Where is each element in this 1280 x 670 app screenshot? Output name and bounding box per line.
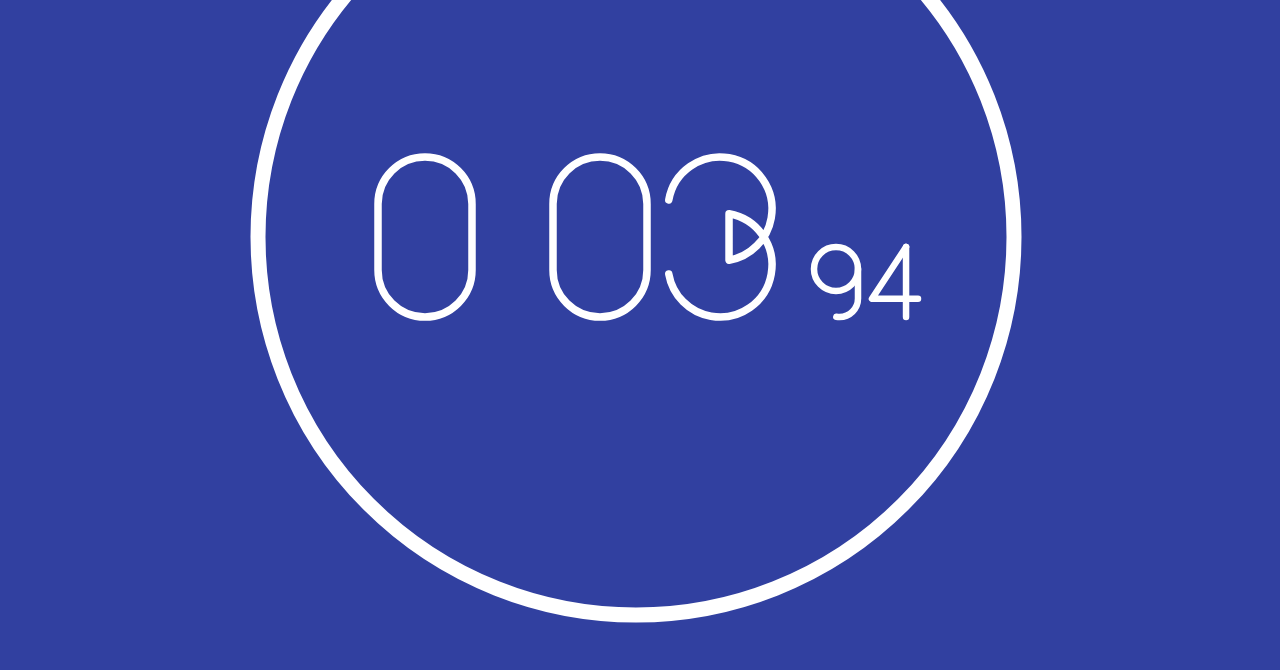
button[interactable]: Stopwatch 0:03.94 (0, 0, 1280, 670)
